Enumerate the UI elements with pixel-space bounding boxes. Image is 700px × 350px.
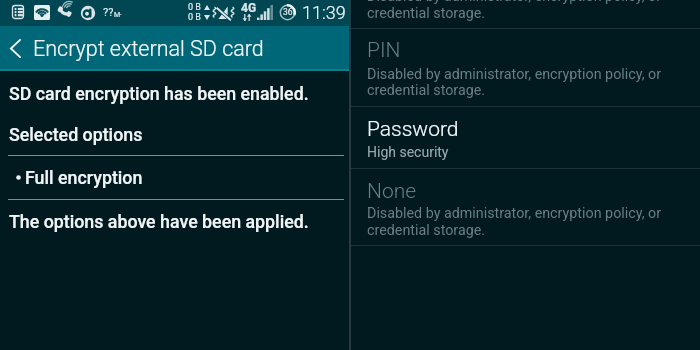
staticText: Disabled by administrator, encryption po… [367,205,662,222]
staticText: 36 [283,7,293,17]
staticText: credential storage. [367,222,486,239]
staticText: None [367,179,417,204]
staticText: Disabled by administrator, encryption po… [367,66,662,83]
staticText: 0 B [188,12,201,23]
button[interactable]: Disabled by administrator, encryption po… [351,0,700,28]
staticText: The options above have been applied. [9,211,309,232]
staticText: Selected options [9,124,143,145]
button[interactable]: PIN [351,29,700,106]
staticText: PIN [367,38,401,63]
button[interactable]: Back [0,30,30,67]
staticText: Disabled by administrator, encryption po… [367,0,662,5]
staticText: Password [367,117,459,142]
staticText: Full encryption [25,167,143,188]
staticText: 4G [241,1,257,15]
staticText: SD card encryption has been enabled. [9,83,309,104]
button[interactable]: None [351,169,700,245]
staticText: ?? [103,6,114,19]
staticText: credential storage. [367,5,486,22]
staticText: credential storage. [367,82,486,99]
staticText: 0 B [188,2,201,13]
staticText: Encrypt external SD card [33,36,264,61]
button[interactable]: Password [351,107,700,168]
staticText: 11:39 [302,2,346,23]
staticText: M· [114,11,122,19]
staticText: High security [367,144,449,160]
